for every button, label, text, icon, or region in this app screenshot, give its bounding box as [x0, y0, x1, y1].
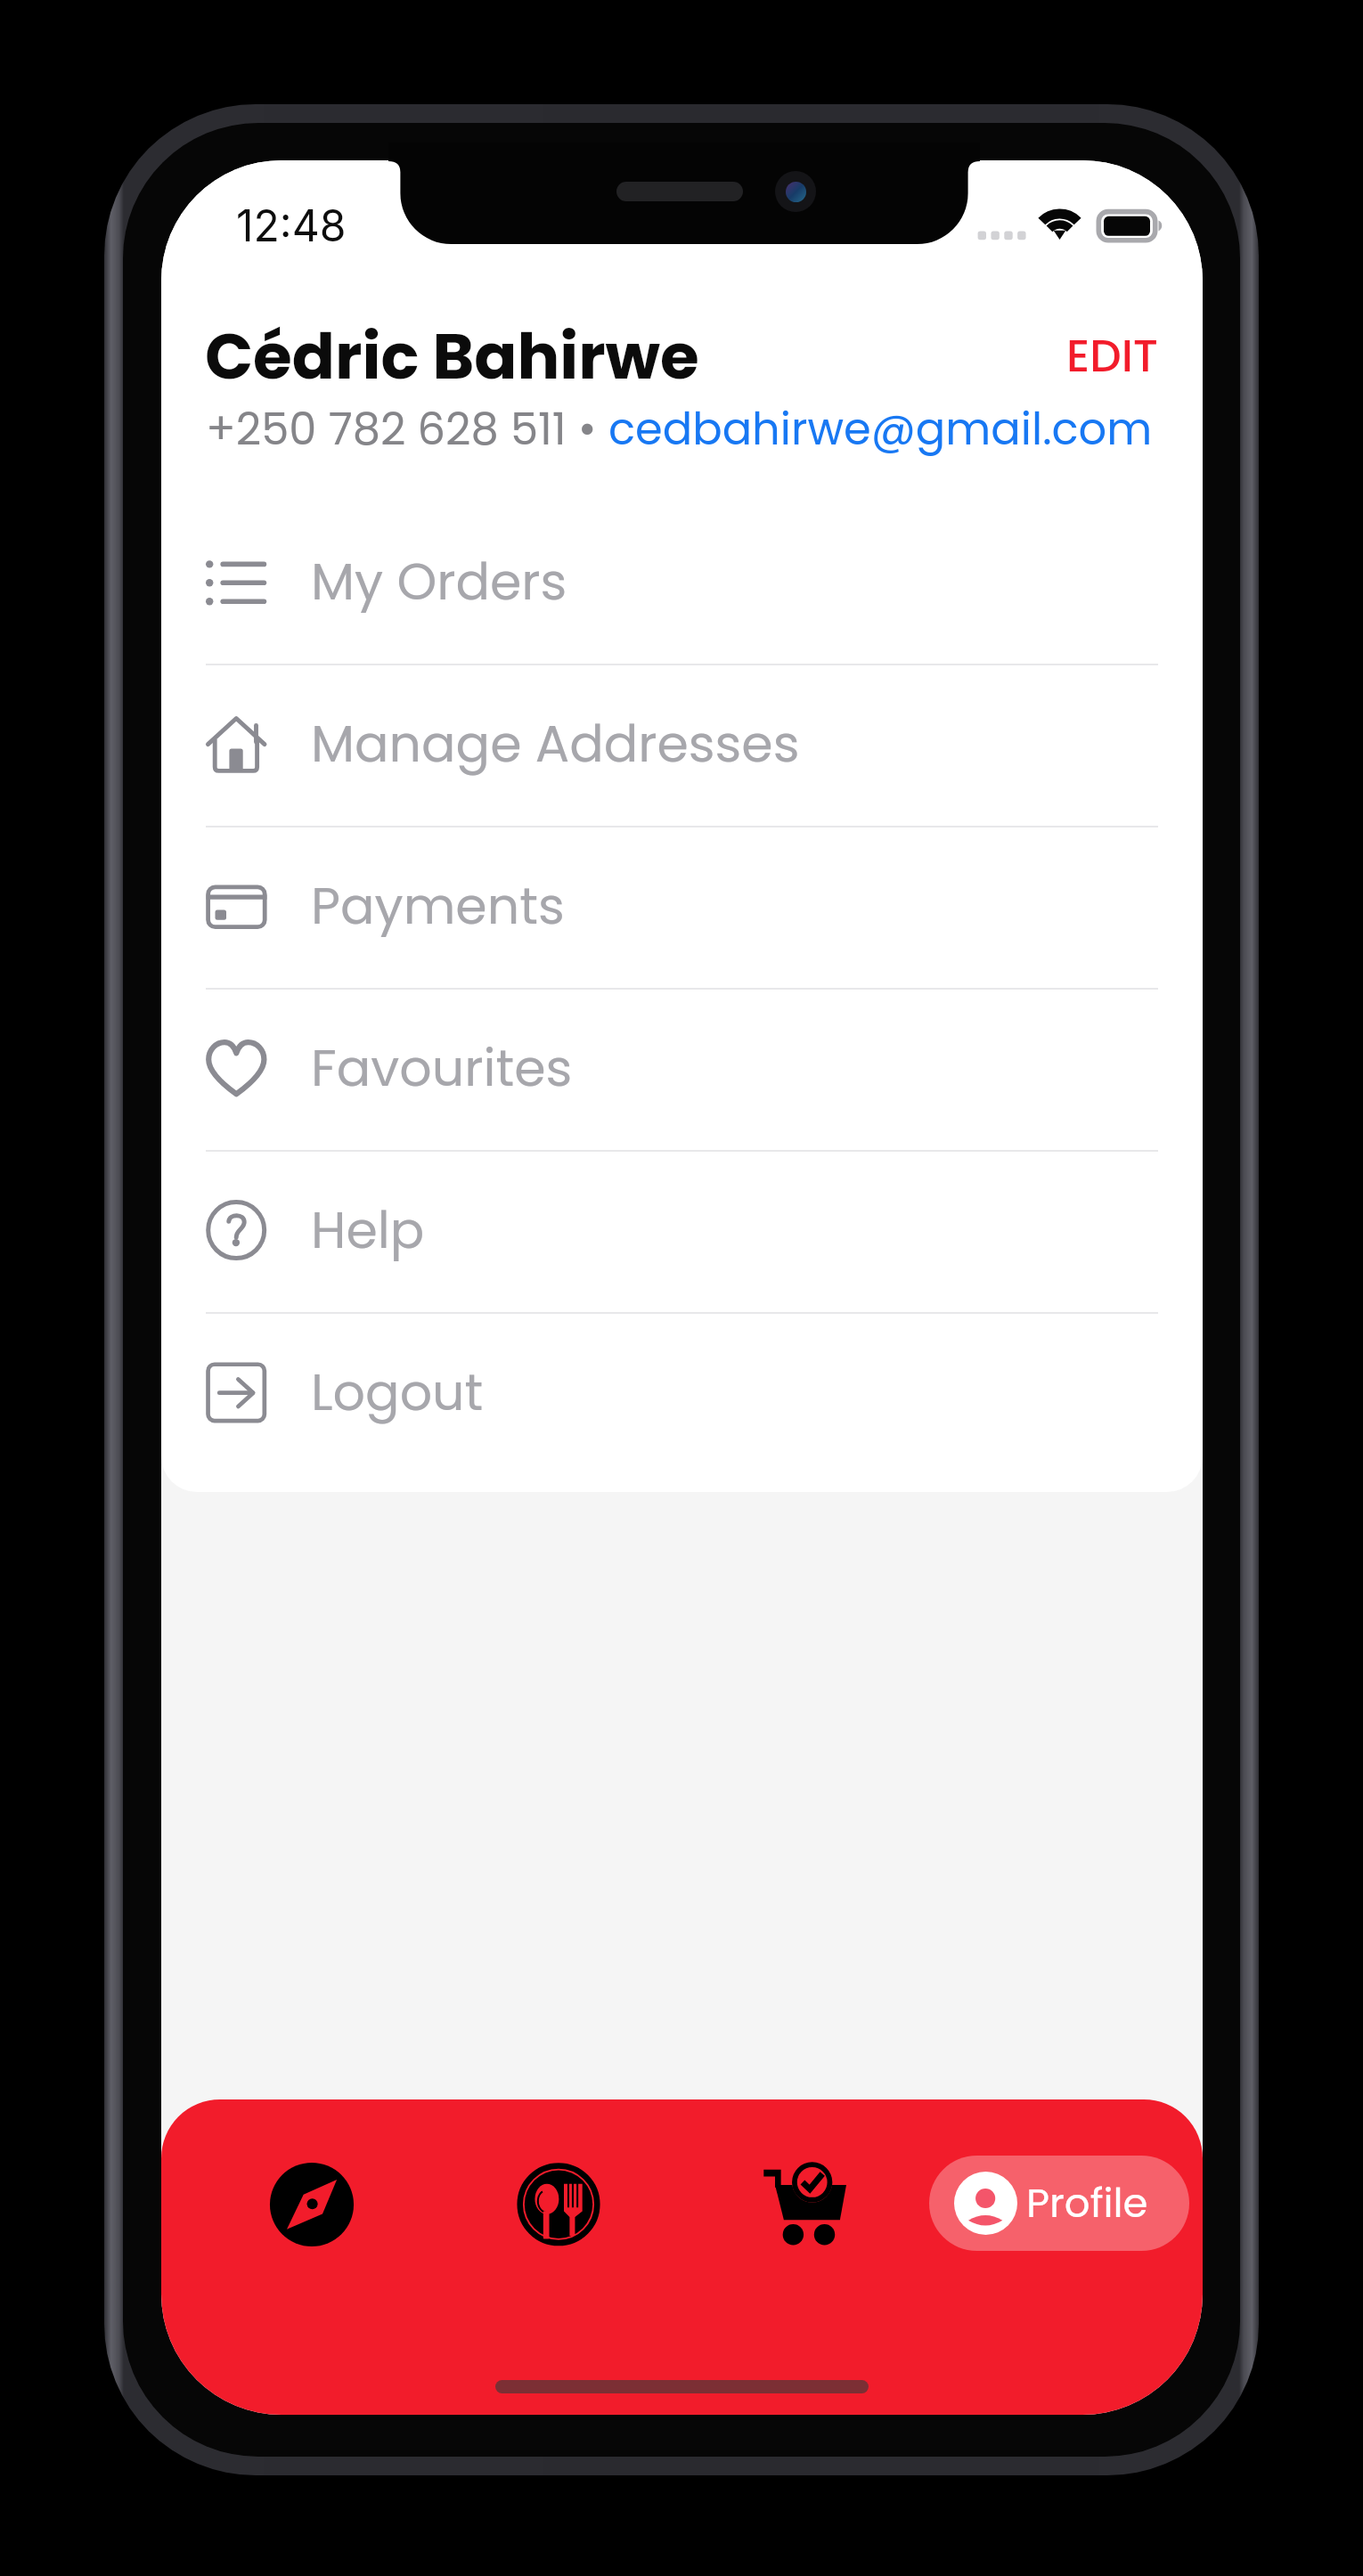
- staticText: Manage Addresses: [311, 708, 800, 779]
- button[interactable]: My Orders: [161, 503, 1203, 665]
- staticText: Payments: [311, 870, 565, 942]
- staticText: My Orders: [311, 546, 567, 617]
- button[interactable]: Manage Addresses: [161, 665, 1203, 827]
- staticText: Cédric Bahirwe: [205, 312, 699, 400]
- button[interactable]: Payments: [161, 827, 1203, 990]
- button[interactable]: Explore: [258, 2151, 365, 2258]
- staticText: Help: [311, 1194, 425, 1266]
- button[interactable]: Profile: [929, 2156, 1189, 2251]
- button[interactable]: EDIT: [1041, 309, 1184, 404]
- staticText: Logout: [311, 1357, 484, 1428]
- button[interactable]: Favourites: [161, 990, 1203, 1152]
- staticText: 12:48: [236, 200, 347, 251]
- staticText: Favourites: [311, 1032, 573, 1104]
- button[interactable]: Restaurants: [505, 2151, 612, 2258]
- button[interactable]: Help: [161, 1152, 1203, 1314]
- staticText: +250 782 628 511 •: [206, 398, 608, 460]
- button[interactable]: Cart: [752, 2151, 859, 2258]
- staticText: EDIT: [1066, 325, 1159, 387]
- button[interactable]: Logout: [161, 1314, 1203, 1474]
- staticText: Profile: [1026, 2175, 1148, 2231]
- staticText: cedbahirwe@gmail.com: [608, 398, 1153, 460]
